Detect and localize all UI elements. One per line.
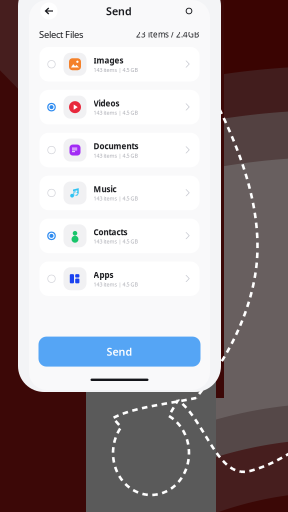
staticText: Send [106, 344, 132, 359]
staticText: 143 items | 4.5 GB [93, 238, 137, 245]
staticText: 143 items | 4.5 GB [93, 195, 137, 202]
button[interactable]: Apps [39, 261, 199, 296]
staticText: Select Files [39, 28, 83, 41]
staticText: Contacts [93, 227, 127, 237]
button[interactable]: Videos [39, 90, 199, 124]
button[interactable]: More [179, 1, 199, 21]
button[interactable]: Images [39, 47, 199, 81]
staticText: 143 items | 4.5 GB [93, 281, 137, 288]
button[interactable]: Back [39, 1, 59, 21]
staticText: Music [93, 184, 116, 194]
button[interactable]: Contacts [39, 219, 199, 253]
staticText: 23 items / 2.4GB [136, 29, 199, 40]
staticText: Send [106, 4, 132, 18]
staticText: 143 items | 4.5 GB [93, 66, 137, 73]
button[interactable]: Music [39, 176, 199, 210]
button[interactable]: Documents [39, 133, 199, 167]
staticText: 143 items | 4.5 GB [93, 152, 137, 159]
staticText: Images [93, 55, 123, 66]
button[interactable]: Send [38, 337, 200, 367]
staticText: 143 items | 4.5 GB [93, 109, 137, 116]
staticText: Documents [93, 141, 138, 151]
staticText: Apps [93, 270, 113, 280]
staticText: Videos [93, 98, 119, 109]
